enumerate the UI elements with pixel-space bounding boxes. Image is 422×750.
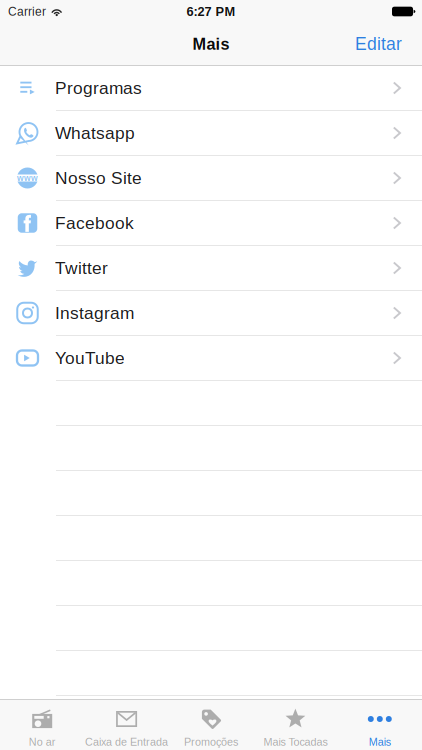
button[interactable]: Facebook <box>0 201 422 246</box>
button[interactable]: YouTube <box>0 336 422 381</box>
staticText: YouTube <box>55 348 125 368</box>
staticText: Programas <box>55 78 142 98</box>
staticText: Whatsapp <box>55 123 135 143</box>
button[interactable]: Mais <box>338 700 422 750</box>
button[interactable]: No ar <box>0 700 84 750</box>
staticText: Editar <box>355 34 402 54</box>
button[interactable]: Twitter <box>0 246 422 291</box>
button[interactable]: Programas <box>0 66 422 111</box>
button[interactable]: Instagram <box>0 291 422 336</box>
staticText: Mais Tocadas <box>263 736 327 748</box>
staticText: Nosso Site <box>55 168 142 188</box>
staticText: No ar <box>29 736 56 748</box>
staticText: Caixa de Entrada <box>85 736 168 748</box>
staticText: 6:27 PM <box>186 4 235 19</box>
button[interactable]: Editar <box>343 26 422 62</box>
staticText: Carrier <box>8 5 46 18</box>
button[interactable]: Mais Tocadas <box>253 700 338 750</box>
button[interactable]: Promoções <box>169 700 253 750</box>
staticText: Instagram <box>55 303 134 323</box>
staticText: Mais <box>369 736 391 748</box>
staticText: Promoções <box>184 736 238 748</box>
button[interactable]: www <box>0 156 422 201</box>
staticText: Facebook <box>55 213 134 233</box>
staticText: Twitter <box>55 258 108 278</box>
staticText: Mais <box>192 35 229 53</box>
staticText: www <box>17 173 38 183</box>
button[interactable]: Caixa de Entrada <box>84 700 169 750</box>
button[interactable]: Whatsapp <box>0 111 422 156</box>
